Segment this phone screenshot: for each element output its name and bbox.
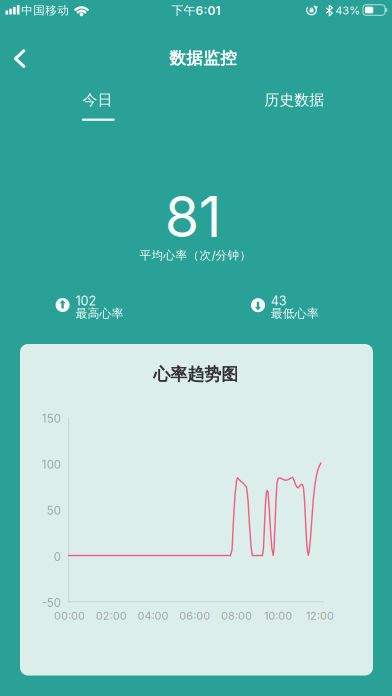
staticText: 102 <box>75 293 96 308</box>
staticText: 中国移动 <box>21 3 69 18</box>
staticText: 下午6:01 <box>171 3 220 18</box>
staticText: 最低心率 <box>271 306 319 321</box>
staticText: 50 <box>47 504 61 518</box>
button[interactable]: 历史数据 <box>234 80 354 120</box>
staticText: 12:00 <box>306 609 334 622</box>
staticText: 心率趋势图 <box>153 364 238 385</box>
staticText: 43% <box>335 4 360 17</box>
button[interactable]: Back <box>0 37 42 81</box>
staticText: 10:00 <box>264 609 292 622</box>
staticText: 81 <box>165 183 222 250</box>
staticText: 最高心率 <box>75 306 123 321</box>
staticText: 43 <box>271 293 287 308</box>
staticText: 04:00 <box>138 609 169 622</box>
staticText: 00:00 <box>54 609 85 622</box>
staticText: 0 <box>54 550 61 564</box>
staticText: 150 <box>42 412 61 425</box>
button[interactable]: 今日 <box>52 77 142 127</box>
staticText: 06:00 <box>179 609 210 622</box>
staticText: 历史数据 <box>264 91 324 109</box>
staticText: 02:00 <box>96 609 127 622</box>
staticText: -50 <box>42 596 61 610</box>
staticText: 平均心率（次/分钟） <box>139 248 251 263</box>
staticText: 数据监控 <box>169 48 237 69</box>
staticText: 今日 <box>83 91 113 109</box>
staticText: 100 <box>42 458 61 471</box>
staticText: 08:00 <box>221 609 252 622</box>
